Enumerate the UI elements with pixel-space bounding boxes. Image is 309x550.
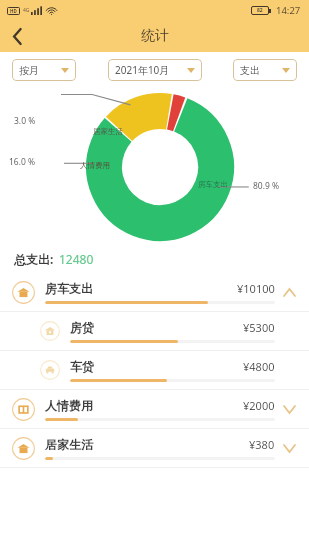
staticText: 14:27 — [276, 4, 301, 17]
staticText: ¥2000 — [243, 398, 275, 413]
staticText: 2021年10月 — [115, 63, 170, 77]
staticText: 房车支出 — [198, 180, 228, 189]
staticText: 80.9 % — [253, 180, 280, 192]
staticText: HD — [10, 8, 17, 14]
staticText: 房车支出 — [45, 281, 93, 296]
button[interactable]: 房车支出 — [0, 273, 309, 311]
button[interactable]: 车贷 — [0, 351, 309, 389]
button[interactable]: 人情费用 — [0, 390, 309, 428]
staticText: 统计 — [141, 27, 169, 45]
staticText: ¥4800 — [243, 359, 275, 374]
staticText: ¥380 — [249, 437, 275, 452]
staticText: 12480 — [59, 251, 94, 267]
staticText: 房贷 — [70, 320, 94, 335]
staticText: ¥5300 — [243, 320, 275, 335]
staticText: 居家生活 — [93, 127, 123, 136]
staticText: 按月 — [19, 64, 39, 77]
staticText: 人情费用 — [80, 161, 110, 170]
button[interactable]: 居家生活 — [0, 429, 309, 467]
staticText: 82 — [257, 7, 263, 14]
button[interactable]: 房贷 — [0, 312, 309, 350]
button[interactable]: 2021年10月 — [108, 59, 202, 81]
staticText: 支出 — [240, 64, 260, 77]
staticText: 车贷 — [70, 359, 94, 374]
staticText: 3.0 % — [14, 115, 36, 127]
button[interactable]: 按月 — [12, 59, 76, 81]
staticText: ¥10100 — [237, 281, 275, 296]
staticText: 4G — [23, 7, 30, 14]
staticText: 人情费用 — [45, 398, 93, 413]
button[interactable]: Back — [0, 20, 34, 52]
staticText: 居家生活 — [45, 437, 93, 452]
button[interactable]: Expand — [275, 395, 303, 423]
staticText: 16.0 % — [9, 156, 36, 168]
button[interactable]: Expand — [275, 434, 303, 462]
button[interactable]: 支出 — [233, 59, 297, 81]
staticText: 总支出: — [14, 251, 54, 267]
button[interactable]: Collapse — [275, 278, 303, 306]
